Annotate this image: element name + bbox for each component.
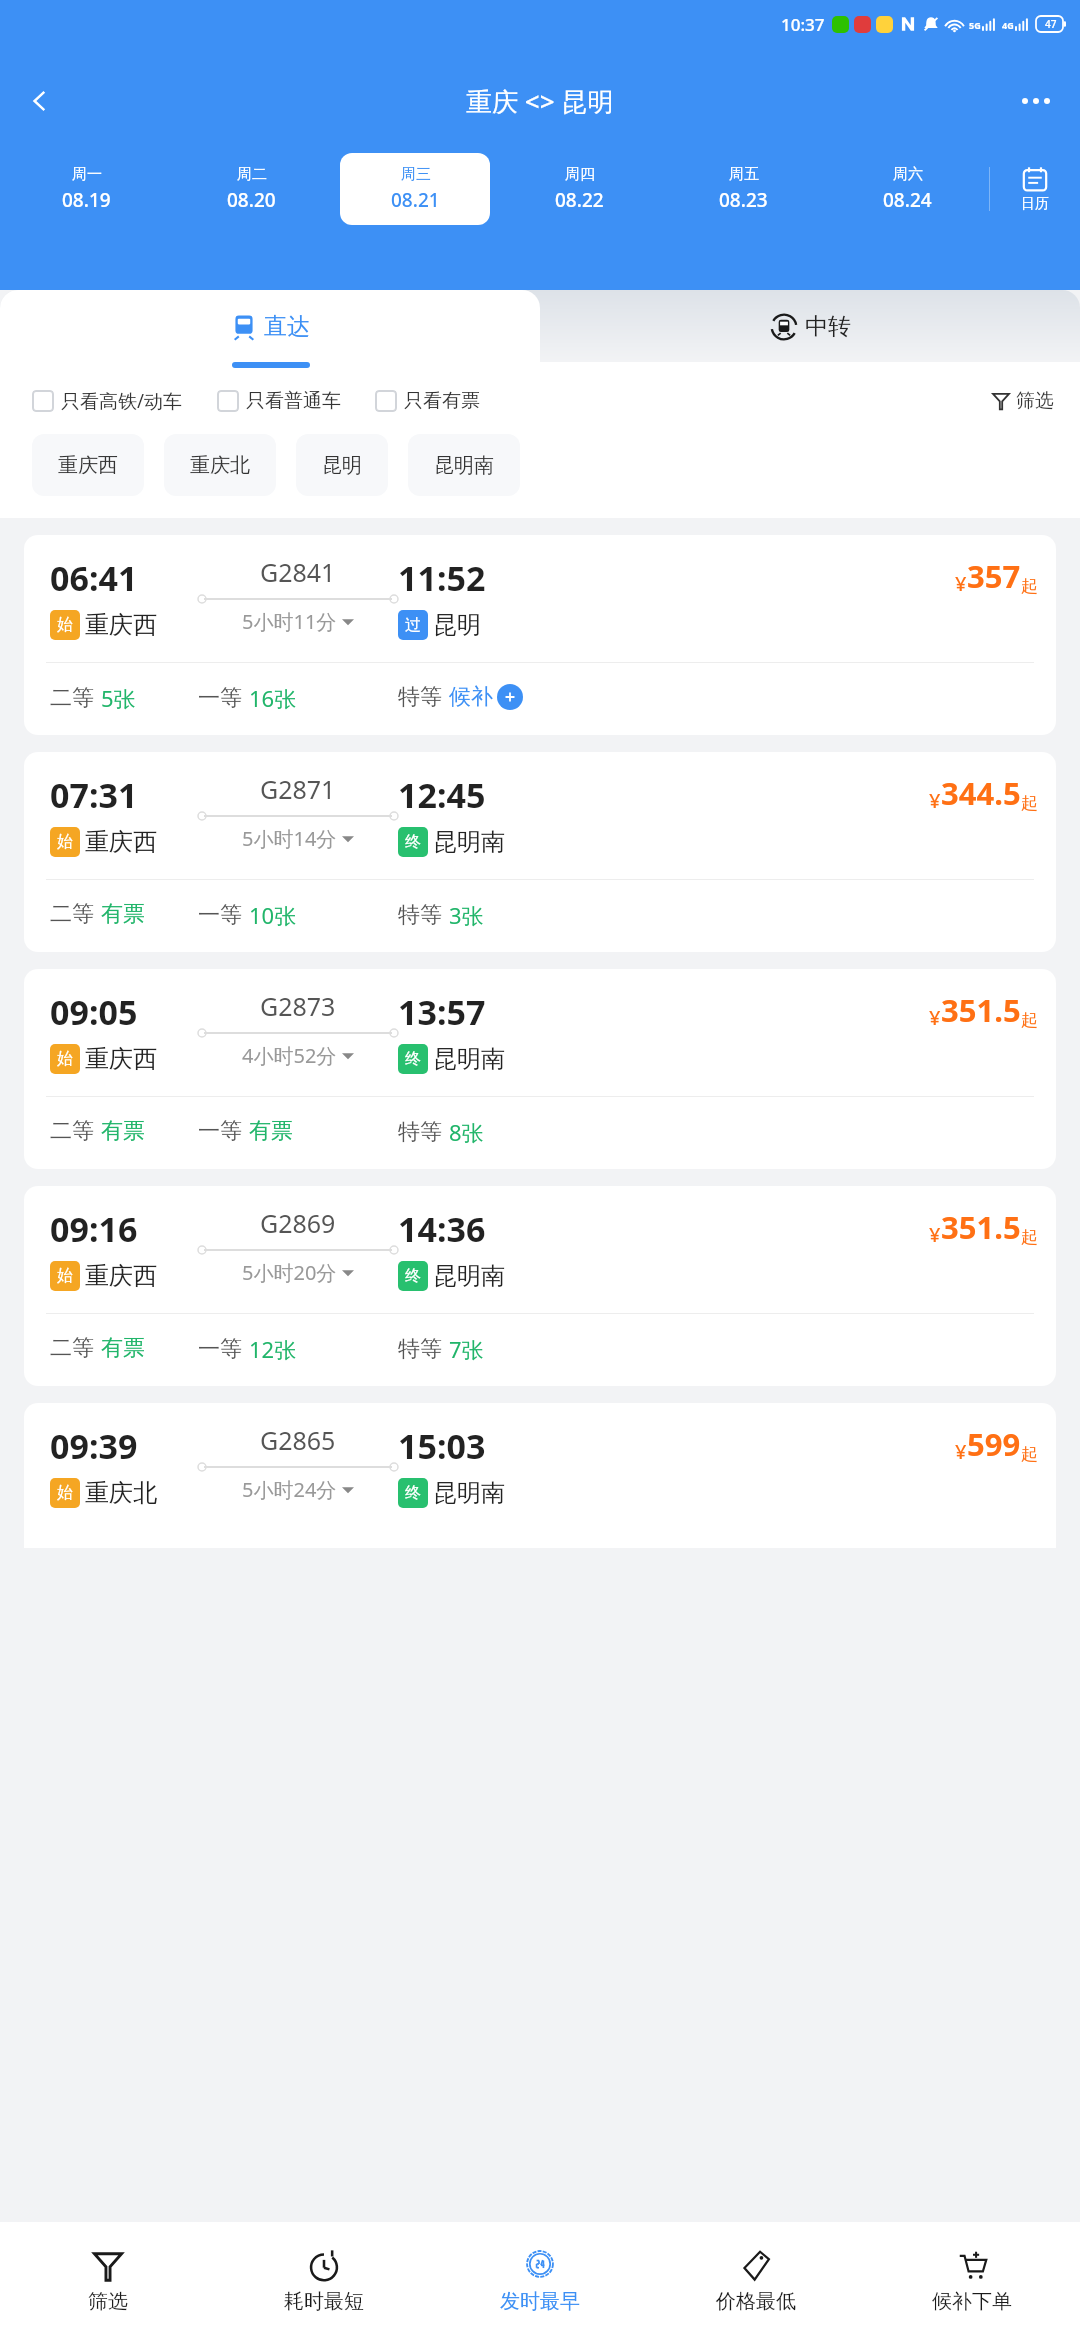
staticText: 昆明南 — [433, 1261, 505, 1291]
button[interactable]: 06:41 — [24, 535, 1056, 735]
staticText: 直达 — [264, 312, 310, 341]
staticText: 08.20 — [227, 187, 276, 213]
button[interactable]: 周四 — [504, 153, 654, 225]
staticText: 06:41 — [50, 555, 138, 601]
staticText: 发时最早 — [500, 2289, 580, 2314]
staticText: 日历 — [1021, 195, 1049, 213]
staticText: 终 — [405, 832, 421, 852]
button[interactable]: More — [1008, 73, 1064, 129]
button[interactable]: 筛选 — [0, 2222, 216, 2340]
staticText: 周四 — [565, 165, 595, 184]
staticText: 筛选 — [1016, 389, 1054, 413]
staticText: 昆明 — [322, 453, 362, 478]
button[interactable]: 只看有票 — [375, 389, 480, 413]
staticText: 09:16 — [50, 1206, 138, 1252]
staticText: 昆明 — [433, 610, 481, 640]
button[interactable]: 价格最低 — [648, 2222, 864, 2340]
staticText: 起 — [1021, 1227, 1038, 1248]
button[interactable]: 发时最早 — [432, 2222, 648, 2340]
staticText: 14:36 — [398, 1206, 486, 1252]
staticText: 重庆西 — [85, 1044, 157, 1074]
staticText: 始 — [57, 1483, 73, 1503]
staticText: 终 — [405, 1266, 421, 1286]
staticText: 08.23 — [719, 187, 768, 213]
button[interactable]: 重庆北 — [164, 434, 276, 496]
button[interactable]: 耗时最短 — [216, 2222, 432, 2340]
button[interactable]: 候补下单 — [864, 2222, 1080, 2340]
staticText: ¥ — [955, 1438, 967, 1465]
staticText: 昆明南 — [433, 1478, 505, 1508]
staticText: G2865 — [260, 1423, 336, 1457]
button[interactable]: 日历 — [990, 153, 1080, 225]
staticText: 12:45 — [398, 772, 486, 818]
staticText: 3张 — [449, 900, 484, 930]
button[interactable]: 09:16 — [24, 1186, 1056, 1386]
staticText: 08.19 — [62, 187, 111, 213]
staticText: 有票 — [101, 1117, 145, 1145]
button[interactable]: 周五 — [668, 153, 818, 225]
staticText: 重庆西 — [85, 827, 157, 857]
staticText: 特等 — [398, 901, 442, 929]
staticText: 有票 — [101, 1334, 145, 1362]
staticText: 重庆西 — [85, 610, 157, 640]
staticText: 二等 — [50, 1117, 94, 1145]
staticText: 重庆北 — [85, 1478, 157, 1508]
staticText: 47 — [1045, 17, 1057, 31]
staticText: 16张 — [249, 683, 297, 713]
staticText: 只看普通车 — [246, 389, 341, 413]
button[interactable]: 只看高铁/动车 — [32, 388, 183, 414]
staticText: 一等 — [198, 1335, 242, 1363]
staticText: 13:57 — [398, 989, 486, 1035]
staticText: 起 — [1021, 576, 1038, 597]
staticText: G2869 — [260, 1206, 336, 1240]
button[interactable]: 09:39 — [24, 1403, 1056, 1548]
button[interactable]: 只看普通车 — [217, 389, 341, 413]
button[interactable]: 昆明 — [296, 434, 388, 496]
staticText: 候补下单 — [932, 2289, 1012, 2314]
staticText: 特等 — [398, 1118, 442, 1146]
staticText: 周三 — [401, 165, 431, 184]
staticText: G2871 — [260, 772, 336, 806]
staticText: 特等 — [398, 683, 442, 711]
staticText: 中转 — [805, 312, 851, 341]
staticText: 重庆北 — [190, 453, 250, 478]
button[interactable]: 周六 — [832, 153, 982, 225]
button[interactable]: 07:31 — [24, 752, 1056, 952]
button[interactable]: 09:05 — [24, 969, 1056, 1169]
staticText: 起 — [1021, 1010, 1038, 1031]
staticText: 5小时14分 — [242, 825, 337, 852]
staticText: 周二 — [237, 165, 267, 184]
button[interactable]: Back — [14, 75, 66, 127]
staticText: 15:03 — [398, 1423, 486, 1469]
button[interactable]: 昆明南 — [408, 434, 520, 496]
staticText: 5小时24分 — [242, 1476, 337, 1503]
staticText: 一等 — [198, 1117, 242, 1145]
staticText: G2873 — [260, 989, 336, 1023]
button[interactable]: 候补 — [449, 683, 523, 711]
staticText: 10:37 — [781, 13, 825, 36]
staticText: 一等 — [198, 684, 242, 712]
button[interactable]: 直达 — [0, 290, 540, 362]
staticText: 二等 — [50, 684, 94, 712]
staticText: 二等 — [50, 900, 94, 928]
button[interactable]: 周三 — [340, 153, 490, 225]
staticText: ¥ — [929, 1221, 941, 1248]
staticText: 只看有票 — [404, 389, 480, 413]
button[interactable]: 中转 — [540, 290, 1080, 362]
button[interactable]: 重庆西 — [32, 434, 144, 496]
staticText: 11:52 — [398, 555, 486, 601]
button[interactable]: 周二 — [176, 153, 326, 225]
staticText: 08.21 — [391, 187, 440, 213]
staticText: ¥ — [929, 787, 941, 814]
button[interactable]: 周一 — [11, 153, 162, 225]
staticText: 只看高铁/动车 — [61, 388, 183, 414]
staticText: 昆明南 — [433, 827, 505, 857]
button[interactable]: 筛选 — [991, 389, 1054, 413]
staticText: 一等 — [198, 901, 242, 929]
staticText: 7张 — [449, 1334, 484, 1364]
staticText: 344.5 — [941, 772, 1021, 814]
staticText: 始 — [57, 1049, 73, 1069]
staticText: 599 — [967, 1423, 1021, 1465]
staticText: 12张 — [249, 1334, 297, 1364]
staticText: 重庆西 — [58, 453, 118, 478]
